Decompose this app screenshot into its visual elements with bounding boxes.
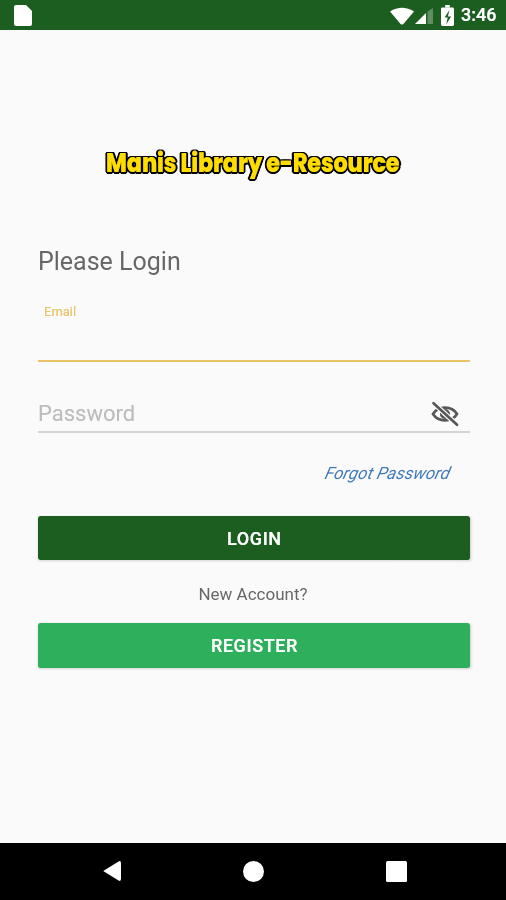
staticText: Manis Library e-Resource xyxy=(108,144,402,181)
staticText: 3:46 xyxy=(461,4,497,25)
staticText: Email xyxy=(44,304,77,319)
staticText: New Account? xyxy=(0,584,506,604)
staticText: Manis Library e-Resource xyxy=(107,146,401,182)
button[interactable]: Back xyxy=(88,848,134,894)
staticText: Password xyxy=(38,401,136,427)
button[interactable]: Home xyxy=(230,848,276,894)
button[interactable]: REGISTER xyxy=(38,623,470,668)
staticText: Manis Library e-Resource xyxy=(105,145,398,182)
button[interactable]: Recent apps xyxy=(373,848,419,894)
staticText: Manis Library e-Resource xyxy=(107,142,401,179)
staticText: Manis Library e-Resource xyxy=(105,142,399,179)
button[interactable]: Show password xyxy=(429,398,461,430)
staticText: Manis Library e-Resource xyxy=(106,146,400,182)
staticText: LOGIN xyxy=(227,528,282,549)
staticText: Manis Library e-Resource xyxy=(108,145,401,182)
staticText: Manis Library e-Resource xyxy=(105,145,398,182)
staticText: Manis Library e-Resource xyxy=(106,142,400,179)
staticText: Manis Library e-Resource xyxy=(105,143,398,180)
staticText: Manis Library e-Resource xyxy=(105,143,398,180)
staticText: REGISTER xyxy=(211,635,298,656)
staticText: Manis Library e-Resource xyxy=(105,146,399,182)
staticText: Manis Library e-Resource xyxy=(104,144,398,181)
staticText: Manis Library e-Resource xyxy=(106,144,400,181)
staticText: Manis Library e-Resource xyxy=(108,145,401,182)
staticText: Please Login xyxy=(38,247,181,276)
staticText: Manis Library e-Resource xyxy=(108,143,401,180)
staticText: Manis Library e-Resource xyxy=(108,143,401,180)
button[interactable]: Forgot Password xyxy=(324,463,449,483)
button[interactable]: LOGIN xyxy=(38,516,470,560)
